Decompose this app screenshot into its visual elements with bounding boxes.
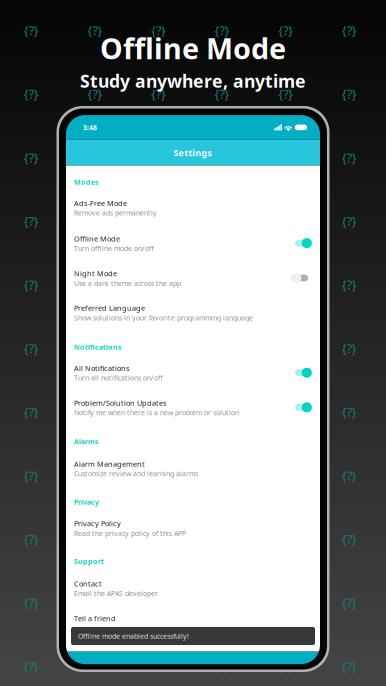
button[interactable]: Contact	[74, 578, 312, 599]
staticText: Offline mode enabled successfully!	[78, 631, 189, 641]
staticText: {?}	[87, 530, 102, 548]
staticText: Ads-Free Mode	[74, 198, 127, 208]
staticText: {?}	[24, 149, 39, 166]
staticText: {?}	[215, 85, 230, 103]
staticText: {?}	[215, 658, 230, 675]
staticText: {?}	[342, 276, 357, 293]
staticText: {?}	[24, 530, 39, 548]
staticText: {?}	[151, 467, 166, 484]
staticText: Show solutions in your favorite programm…	[74, 313, 253, 322]
staticText: Modes	[74, 177, 99, 187]
staticText: {?}	[24, 594, 39, 611]
staticText: Customize review and learning alarms	[74, 469, 198, 478]
staticText: Alarm Management	[74, 459, 145, 469]
staticText: Turn all notifications on/off	[74, 373, 163, 383]
staticText: {?}	[278, 149, 293, 166]
staticText: {?}	[151, 276, 166, 293]
staticText: {?}	[215, 149, 230, 166]
staticText: {?}	[24, 276, 39, 293]
button[interactable]: Problem/Solution Updates	[74, 397, 312, 418]
staticText: {?}	[342, 212, 357, 230]
staticText: {?}	[87, 467, 102, 484]
staticText: {?}	[24, 22, 39, 39]
staticText: {?}	[342, 340, 357, 357]
staticText: {?}	[87, 149, 102, 166]
staticText: Privacy Policy	[74, 518, 121, 528]
button[interactable]: Night Mode	[74, 268, 312, 289]
staticText: Problem/Solution Updates	[74, 398, 167, 408]
staticText: Read the privacy policy of this APP	[74, 528, 186, 538]
staticText: {?}	[151, 530, 166, 548]
staticText: {?}	[342, 22, 357, 39]
button[interactable]: Alarm Management	[74, 458, 312, 479]
staticText: {?}	[24, 658, 39, 675]
staticText: {?}	[151, 212, 166, 230]
staticText: {?}	[342, 530, 357, 548]
staticText: {?}	[87, 403, 102, 421]
staticText: {?}	[151, 149, 166, 166]
button[interactable]: All Notifications	[74, 363, 312, 384]
button[interactable]: Ads-Free Mode	[74, 198, 312, 219]
button[interactable]: Tell a friend	[74, 613, 312, 624]
button[interactable]: Privacy Policy	[74, 518, 312, 539]
staticText: {?}	[87, 22, 102, 39]
staticText: All Notifications	[74, 363, 130, 373]
staticText: {?}	[87, 85, 102, 103]
staticText: {?}	[151, 658, 166, 675]
staticText: {?}	[342, 403, 357, 421]
staticText: {?}	[151, 22, 166, 39]
staticText: {?}	[342, 85, 357, 103]
staticText: Settings	[173, 146, 212, 159]
staticText: Notifications	[74, 342, 122, 352]
staticText: {?}	[87, 276, 102, 293]
staticText: {?}	[278, 658, 293, 675]
staticText: {?}	[24, 467, 39, 484]
staticText: Offline Mode	[74, 234, 120, 244]
button[interactable]: Preferred Language	[74, 302, 312, 323]
staticText: Notify me when there is a new problem or…	[74, 408, 239, 417]
staticText: {?}	[278, 22, 293, 39]
staticText: Support	[74, 556, 104, 566]
staticText: {?}	[151, 85, 166, 103]
button[interactable]: Offline Mode	[74, 233, 312, 254]
staticText: {?}	[342, 658, 357, 675]
staticText: {?}	[87, 212, 102, 230]
staticText: {?}	[151, 403, 166, 421]
staticText: {?}	[24, 340, 39, 357]
staticText: {?}	[278, 85, 293, 103]
staticText: Offline Mode	[100, 28, 286, 67]
staticText: Study anywhere, anytime	[80, 69, 306, 93]
staticText: {?}	[24, 85, 39, 103]
staticText: {?}	[342, 467, 357, 484]
staticText: Preferred Language	[74, 303, 145, 313]
staticText: {?}	[151, 594, 166, 611]
staticText: {?}	[87, 340, 102, 357]
staticText: {?}	[87, 658, 102, 675]
staticText: Alarms	[74, 436, 99, 446]
staticText: {?}	[215, 403, 230, 421]
staticText: Tell a friend	[74, 613, 116, 623]
staticText: {?}	[87, 594, 102, 611]
staticText: {?}	[24, 212, 39, 230]
staticText: {?}	[342, 149, 357, 166]
staticText: Privacy	[74, 497, 99, 507]
staticText: Contact	[74, 579, 102, 589]
staticText: {?}	[24, 403, 39, 421]
staticText: {?}	[278, 276, 293, 293]
staticText: {?}	[342, 594, 357, 611]
staticText: {?}	[215, 22, 230, 39]
staticText: Turn offline mode on/off	[74, 244, 154, 253]
